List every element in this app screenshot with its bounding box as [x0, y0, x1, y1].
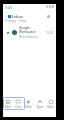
- button[interactable]: Meet: [23, 97, 34, 111]
- button[interactable]: Chat: [13, 97, 23, 111]
- staticText: 9:41: [5, 5, 12, 10]
- staticText: Space: [36, 105, 44, 109]
- staticText: More: [47, 105, 54, 109]
- button[interactable]: Space: [34, 97, 45, 111]
- staticText: 10:24: [46, 31, 54, 35]
- staticText: Meet: [25, 105, 32, 109]
- staticText: Chat: [15, 105, 21, 109]
- button[interactable]: Google Workspace: [3, 26, 56, 39]
- button[interactable]: More: [45, 97, 56, 111]
- staticText: Primary · Today: [5, 19, 27, 23]
- button[interactable]: Menu: [6, 13, 13, 20]
- staticText: New features: [19, 35, 38, 39]
- button[interactable]: Mail: [3, 97, 13, 111]
- staticText: Inbox: [12, 14, 23, 19]
- staticText: Google Workspace: [19, 26, 46, 34]
- staticText: Mail: [5, 105, 11, 109]
- button[interactable]: Account: [45, 13, 52, 20]
